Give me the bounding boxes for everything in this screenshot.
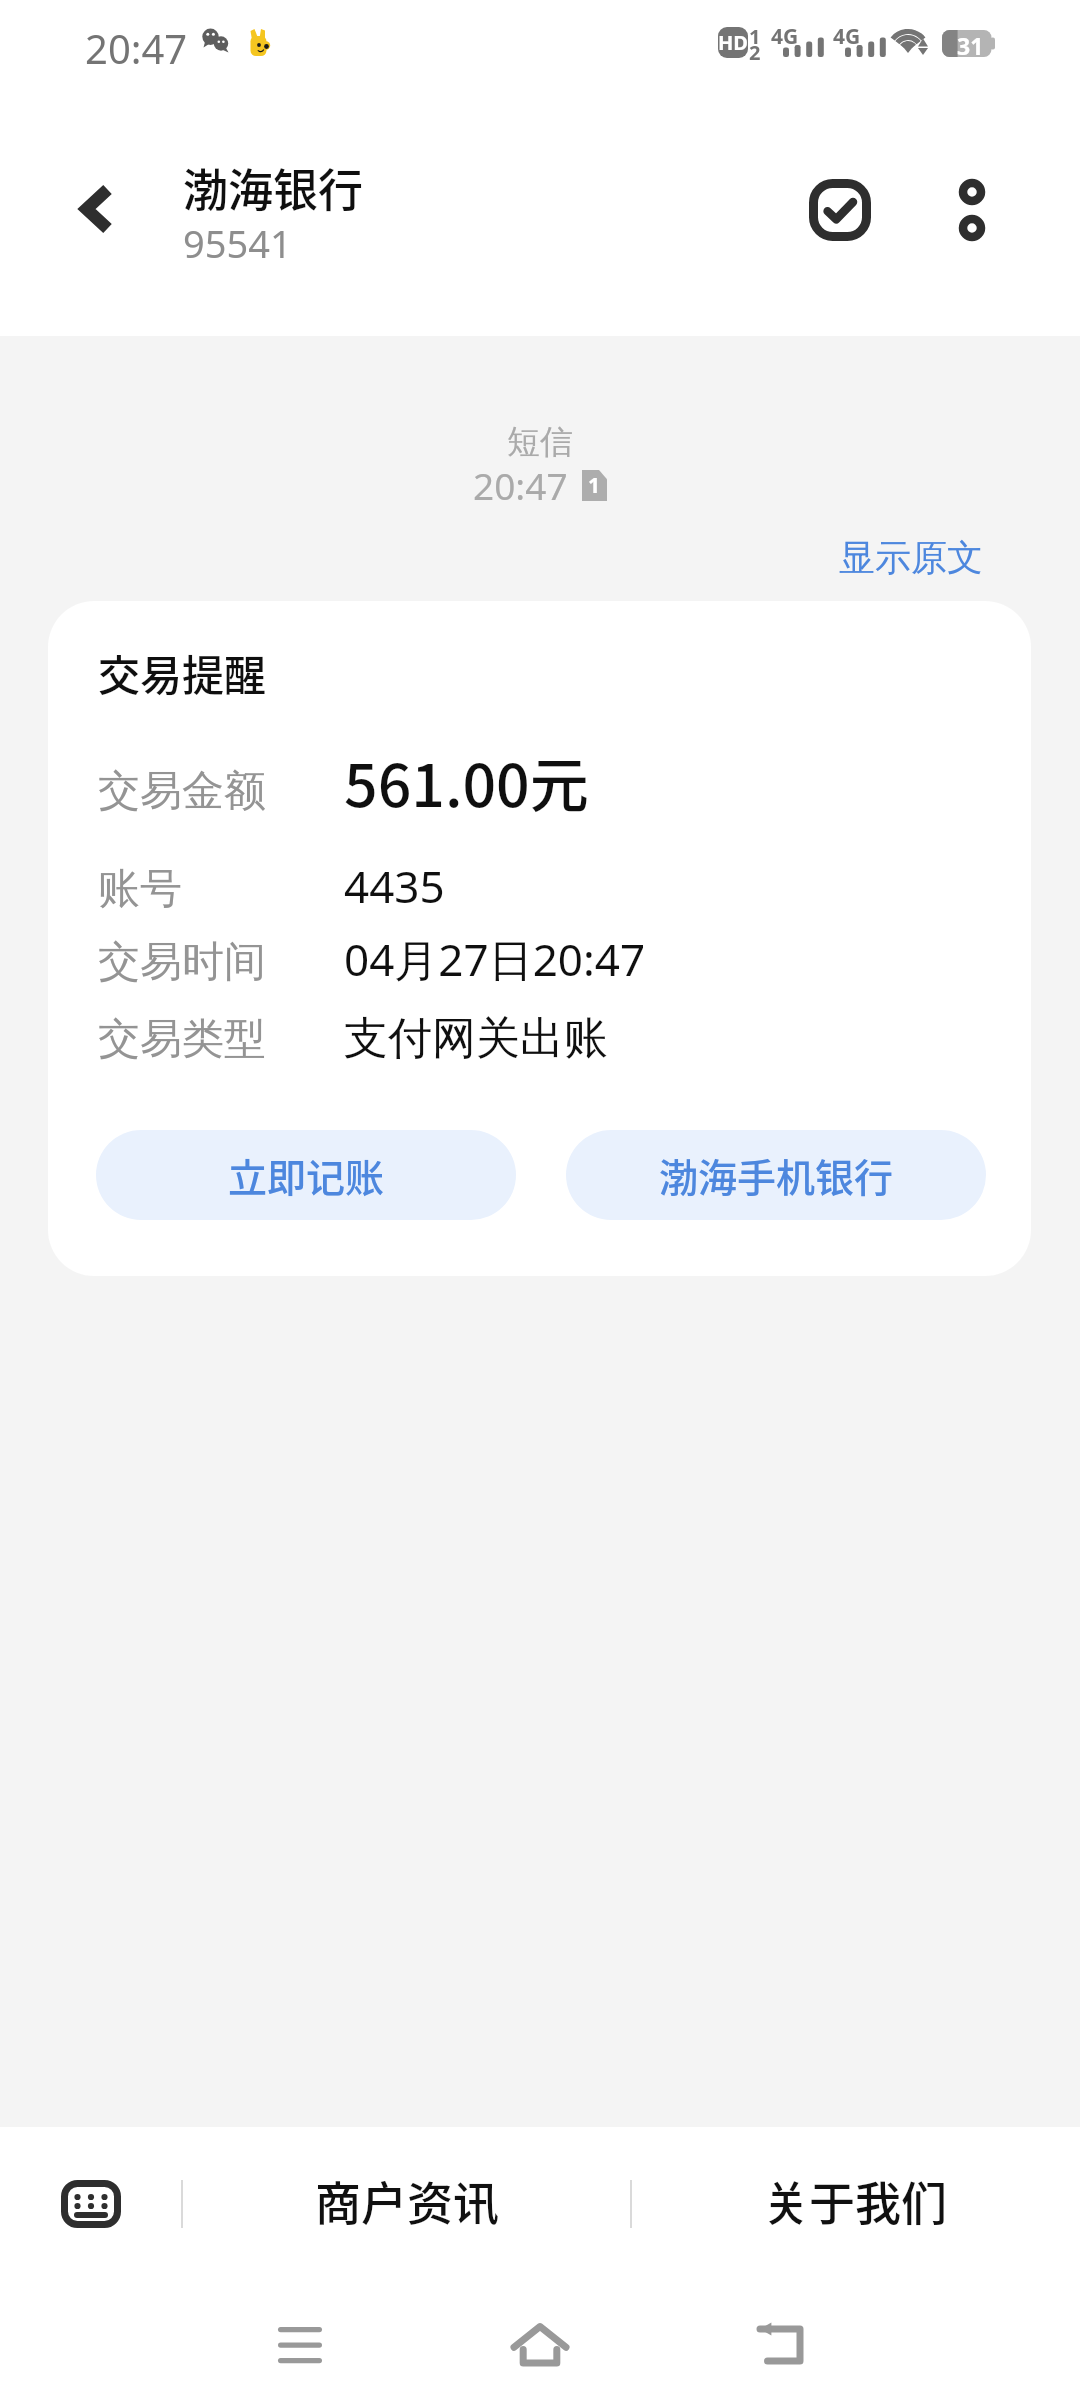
staticText: 1	[749, 23, 761, 50]
staticText: 95541	[183, 217, 292, 269]
button[interactable]: 商户资讯	[233, 2146, 581, 2254]
button[interactable]: Back	[27, 139, 167, 279]
staticText: 4G	[771, 22, 799, 51]
button[interactable]: 立即记账	[96, 1130, 516, 1220]
staticText: 关于我们	[763, 2167, 947, 2234]
staticText: 交易金额	[98, 765, 266, 818]
button[interactable]: 渤海手机银行	[566, 1130, 986, 1220]
staticText: 商户资讯	[315, 2167, 499, 2234]
staticText: 交易时间	[98, 936, 266, 989]
button[interactable]: Recent apps	[230, 2287, 370, 2403]
staticText: 1	[588, 471, 601, 500]
button[interactable]: Keyboard	[30, 2150, 152, 2258]
button[interactable]: Back	[710, 2287, 850, 2403]
staticText: 31	[957, 30, 984, 58]
button[interactable]: 关于我们	[681, 2146, 1029, 2254]
staticText: 渤海手机银行	[659, 1147, 894, 1203]
staticText: 2	[749, 39, 761, 66]
button[interactable]: Home	[470, 2287, 610, 2403]
staticText: HD	[718, 29, 748, 56]
staticText: 04月27日20:47	[344, 929, 646, 989]
staticText: 显示原文	[839, 535, 983, 580]
staticText: 交易类型	[98, 1013, 266, 1066]
staticText: 账号	[98, 863, 182, 916]
staticText: 20:47	[85, 21, 188, 75]
staticText: 渤海银行	[183, 155, 364, 220]
button[interactable]: 交易提醒	[48, 601, 1031, 1276]
staticText: 561.00元	[344, 739, 589, 824]
staticText: 短信	[507, 421, 573, 463]
button[interactable]: 显示原文	[839, 535, 983, 580]
staticText: 立即记账	[228, 1147, 385, 1203]
staticText: 4435	[344, 856, 445, 916]
button[interactable]: More options	[907, 145, 1037, 275]
staticText: 支付网关出账	[344, 1011, 608, 1066]
staticText: 20:47	[473, 460, 568, 510]
button[interactable]: Select messages	[775, 145, 905, 275]
staticText: 交易提醒	[98, 642, 267, 703]
staticText: 4G	[833, 22, 861, 51]
